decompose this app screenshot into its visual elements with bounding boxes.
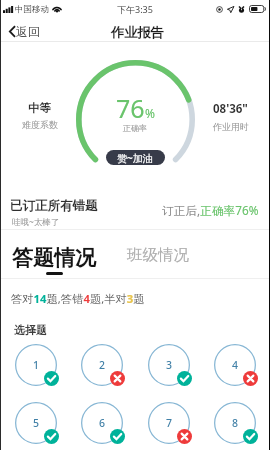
button[interactable]: 答题情况 bbox=[12, 245, 96, 271]
staticText: 难度系数 bbox=[22, 119, 58, 130]
staticText: 中国移动 bbox=[15, 4, 49, 15]
staticText: 3 bbox=[166, 358, 173, 372]
staticText: 1 bbox=[33, 358, 40, 372]
staticText: 08'36" bbox=[213, 101, 248, 117]
staticText: 哇哦~太棒了 bbox=[12, 216, 60, 228]
staticText: 8 bbox=[232, 416, 239, 430]
staticText: 7 bbox=[166, 416, 173, 430]
staticText: 5 bbox=[33, 416, 40, 430]
staticText: 赞~加油 bbox=[117, 151, 153, 165]
staticText: 已订正所有错题 bbox=[10, 198, 98, 214]
button[interactable]: 7 bbox=[148, 402, 190, 444]
button[interactable]: 班级情况 bbox=[127, 245, 189, 265]
staticText: 下午3:35 bbox=[117, 3, 153, 15]
staticText: 6 bbox=[99, 416, 106, 430]
button[interactable]: 8 bbox=[214, 402, 256, 444]
button[interactable]: 1 bbox=[15, 344, 57, 386]
button[interactable]: 6 bbox=[81, 402, 123, 444]
button[interactable]: 2 bbox=[81, 344, 123, 386]
button[interactable]: 返回 bbox=[0, 20, 50, 43]
button[interactable]: 4 bbox=[214, 344, 256, 386]
staticText: 答对14题,答错4题,半对3题 bbox=[11, 291, 145, 306]
staticText: 订正后,正确率76% bbox=[162, 202, 259, 218]
staticText: 中等 bbox=[28, 101, 51, 115]
staticText: 正确率 bbox=[0, 123, 270, 133]
staticText: 2 bbox=[99, 358, 106, 372]
button[interactable]: 赞~加油 bbox=[106, 150, 165, 165]
staticText: 作业报告 bbox=[111, 24, 164, 41]
button[interactable]: 3 bbox=[148, 344, 190, 386]
staticText: 作业用时 bbox=[213, 121, 249, 132]
staticText: 76 bbox=[116, 91, 145, 125]
staticText: 答题情况 bbox=[12, 245, 96, 271]
staticText: 选择题 bbox=[14, 323, 47, 337]
staticText: 4 bbox=[232, 358, 239, 372]
button[interactable]: 5 bbox=[15, 402, 57, 444]
staticText: 班级情况 bbox=[127, 245, 189, 265]
staticText: 返回 bbox=[16, 24, 40, 39]
staticText: % bbox=[145, 105, 155, 121]
